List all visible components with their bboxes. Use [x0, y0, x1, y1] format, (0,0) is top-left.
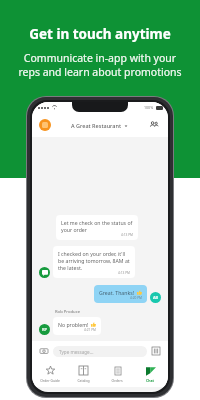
button[interactable]: Camera: [38, 345, 50, 357]
staticText: Communicate in-app with your reps and le…: [8, 51, 192, 79]
staticText: Type message...: [59, 349, 94, 355]
button[interactable]: Let me check on the status of your order: [39, 215, 161, 240]
button[interactable]: RP: [39, 317, 161, 335]
staticText: Orders: [111, 378, 123, 383]
staticText: 4:13 PM: [121, 233, 133, 237]
staticText: RP: [42, 327, 47, 332]
button[interactable]: Chat: [134, 361, 166, 387]
staticText: 4:20 PM: [130, 296, 142, 300]
staticText: Chat: [146, 378, 154, 383]
staticText: Order Guide: [40, 378, 60, 383]
button[interactable]: Contacts: [147, 118, 161, 132]
staticText: 4:13 PM: [118, 271, 130, 275]
staticText: No problem!: [58, 321, 89, 328]
button[interactable]: Orders: [101, 361, 133, 387]
button[interactable]: Order Guide: [34, 361, 66, 387]
staticText: AB: [153, 295, 159, 300]
staticText: I checked on your order, it'll be arrivi…: [58, 250, 130, 271]
button[interactable]: Scan: [150, 345, 162, 357]
staticText: Get in touch anytime: [8, 25, 192, 43]
staticText: Catalog: [77, 378, 90, 383]
staticText: 100%: [144, 105, 154, 110]
staticText: 4:21 PM: [84, 328, 96, 332]
staticText: Let me check on the status of your order: [61, 219, 133, 233]
button[interactable]: Type message...: [53, 346, 147, 357]
staticText: A Great Restaurant: [71, 122, 122, 129]
button[interactable]: A Great Restaurant: [51, 122, 147, 129]
staticText: Great. Thanks!: [99, 289, 135, 296]
button[interactable]: Catalog: [67, 361, 99, 387]
button[interactable]: Account: [39, 119, 51, 131]
button[interactable]: Great. Thanks!: [39, 285, 161, 303]
button[interactable]: I checked on your order, it'll be arrivi…: [39, 246, 161, 278]
staticText: Rob Produce: [55, 309, 81, 315]
